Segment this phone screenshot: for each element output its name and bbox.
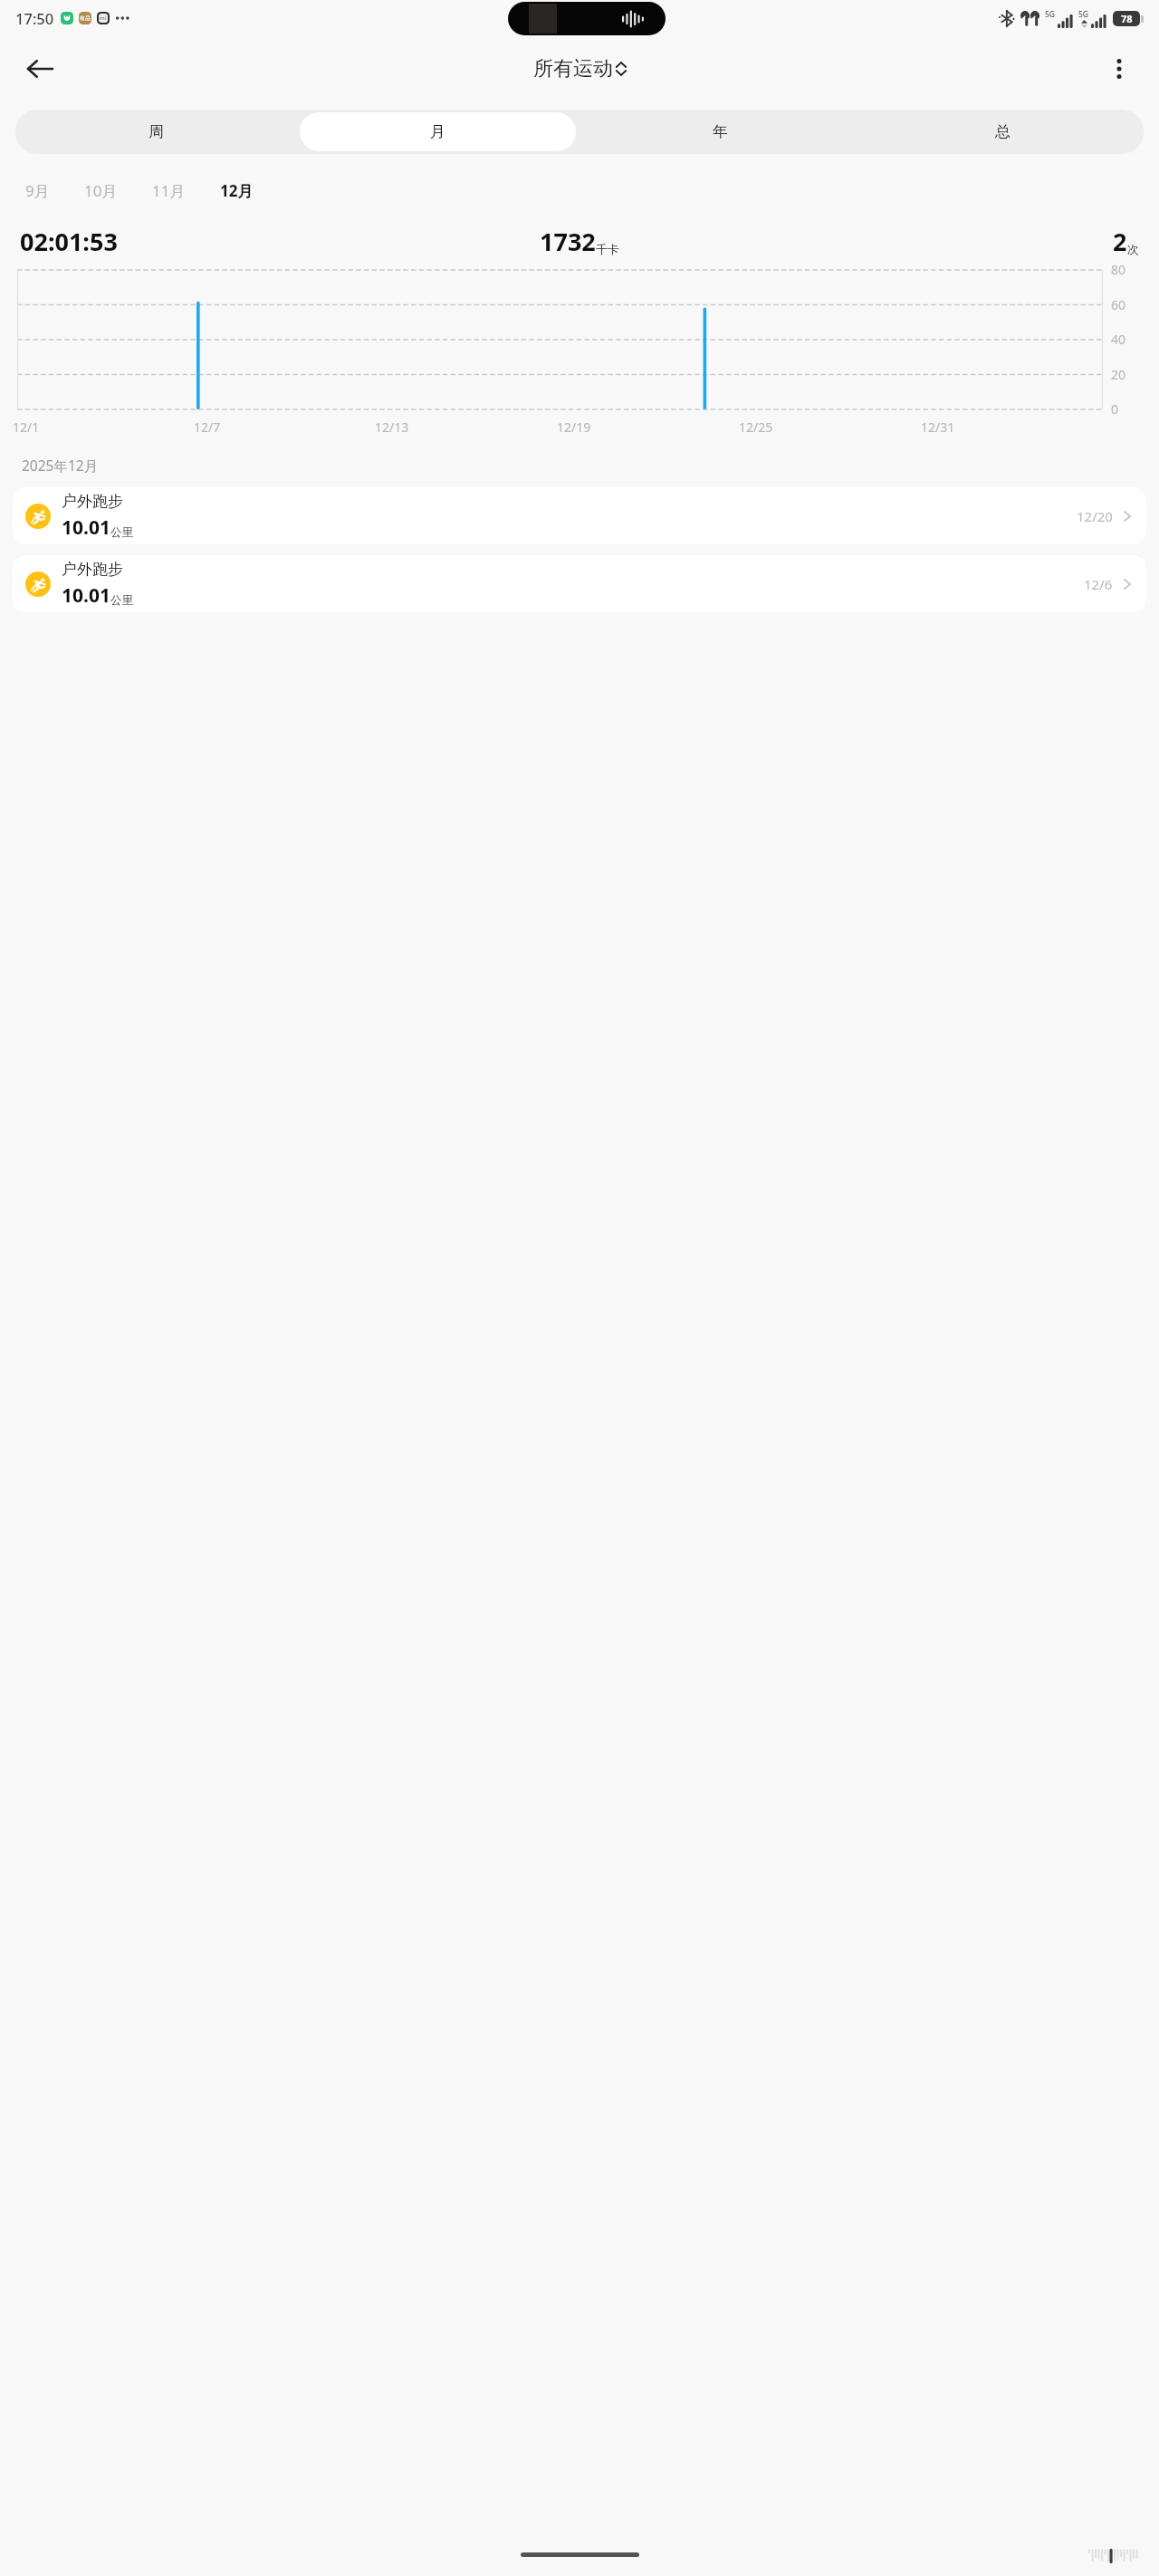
- button[interactable]: Back: [18, 47, 62, 91]
- staticText: 周: [148, 122, 164, 141]
- staticText: 1732: [540, 225, 596, 258]
- staticText: 10.01: [62, 514, 110, 541]
- staticText: 总: [995, 122, 1011, 141]
- staticText: 10.01: [62, 582, 110, 609]
- button[interactable]: 12月: [215, 177, 259, 205]
- button[interactable]: 总: [864, 112, 1141, 151]
- staticText: 公里: [110, 593, 133, 608]
- staticText: 次: [1127, 242, 1139, 256]
- staticText: 所有运动: [533, 56, 613, 82]
- staticText: 12/20: [1077, 507, 1113, 525]
- staticText: 0: [1111, 400, 1119, 418]
- staticText: 户外跑步: [62, 560, 123, 579]
- staticText: 12/7: [194, 418, 221, 436]
- button[interactable]: 户外跑步: [13, 487, 1146, 544]
- button[interactable]: 年: [581, 112, 858, 151]
- staticText: 80: [1111, 261, 1126, 278]
- staticText: 2025年12月: [22, 456, 99, 475]
- staticText: mi: [100, 14, 107, 22]
- staticText: 公里: [110, 525, 133, 540]
- staticText: 12/6: [1084, 575, 1113, 593]
- staticText: 5G: [1078, 9, 1089, 20]
- staticText: 5G: [1045, 9, 1056, 20]
- staticText: 12月: [220, 180, 254, 201]
- staticText: 11月: [152, 180, 186, 201]
- staticText: 月: [430, 122, 445, 141]
- staticText: 02:01:53: [20, 225, 118, 258]
- button[interactable]: 户外跑步: [13, 555, 1146, 612]
- staticText: 17:50: [15, 8, 54, 28]
- staticText: 12/19: [557, 418, 591, 436]
- staticText: 20: [1111, 366, 1126, 383]
- button[interactable]: 月: [300, 112, 576, 151]
- staticText: 年: [713, 122, 728, 141]
- staticText: 12/31: [921, 418, 955, 436]
- staticText: 10月: [84, 180, 118, 201]
- staticText: 有品: [80, 14, 91, 22]
- staticText: 千卡: [596, 242, 619, 256]
- staticText: 12/1: [13, 418, 40, 436]
- button[interactable]: 10月: [79, 177, 123, 205]
- button[interactable]: 11月: [147, 177, 191, 205]
- staticText: 60: [1111, 296, 1126, 313]
- button[interactable]: 周: [18, 112, 294, 151]
- staticText: 12/25: [739, 418, 773, 436]
- staticText: 40: [1111, 331, 1126, 348]
- staticText: 2: [1113, 225, 1127, 258]
- button[interactable]: More options: [1097, 47, 1141, 91]
- staticText: 78: [1121, 12, 1133, 25]
- staticText: 户外跑步: [62, 492, 123, 511]
- staticText: 12/13: [375, 418, 409, 436]
- button[interactable]: 所有运动: [530, 53, 630, 85]
- button[interactable]: 9月: [20, 177, 55, 205]
- staticText: 9月: [25, 180, 50, 201]
